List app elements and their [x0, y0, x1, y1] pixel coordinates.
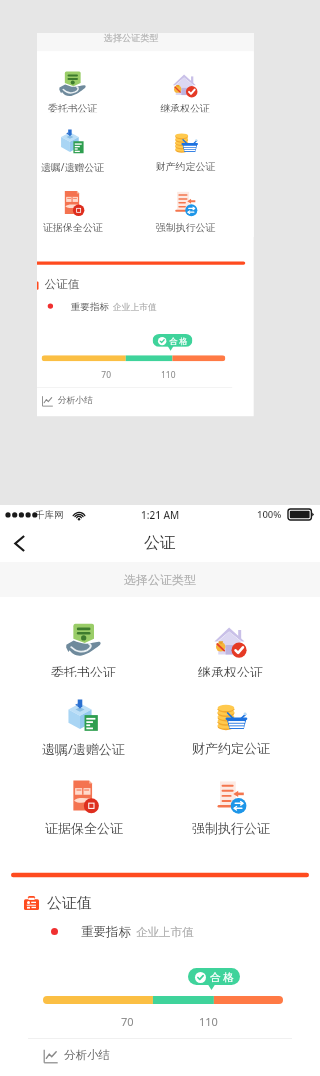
staticText: 110: [152, 353, 167, 364]
staticText: 100%: [257, 508, 282, 521]
button[interactable]: 分析小结: [37, 379, 84, 389]
staticText: 1:21 AM: [141, 508, 180, 522]
button[interactable]: 强制执行公证: [120, 157, 233, 221]
button[interactable]: 财产约定公证: [120, 96, 233, 157]
staticText: 公证值: [37, 261, 70, 276]
staticText: 110: [199, 1014, 218, 1029]
staticText: 企业上市值: [136, 925, 194, 939]
staticText: 遗嘱/遗赠公证: [37, 144, 96, 157]
staticText: 70: [93, 353, 103, 364]
staticText: 选择公证类型: [124, 572, 196, 587]
button[interactable]: 财产约定公证: [157, 677, 304, 757]
staticText: 强制执行公证: [147, 205, 207, 217]
staticText: 财产约定公证: [147, 144, 207, 156]
staticText: 强制执行公证: [192, 820, 270, 836]
staticText: 分析小结: [64, 1048, 110, 1062]
staticText: 委托书公证: [51, 664, 116, 677]
button[interactable]: 继承权公证: [120, 35, 233, 96]
staticText: 证据保全公证: [45, 820, 123, 836]
staticText: 财产约定公证: [192, 740, 270, 756]
staticText: 千库网: [35, 509, 64, 521]
button[interactable]: 委托书公证: [37, 35, 120, 96]
staticText: 证据保全公证: [37, 205, 94, 217]
staticText: 重要指标: [62, 284, 100, 296]
button[interactable]: 合 格: [188, 968, 240, 985]
staticText: 分析小结: [49, 379, 84, 389]
staticText: 70: [121, 1014, 134, 1029]
button[interactable]: 证据保全公证: [37, 157, 120, 221]
button[interactable]: 继承权公证: [157, 597, 304, 677]
button[interactable]: 强制执行公证: [157, 757, 304, 841]
button[interactable]: 分析小结: [43, 1048, 110, 1062]
button[interactable]: 委托书公证: [10, 597, 157, 677]
staticText: 合 格: [210, 970, 234, 984]
staticText: 继承权公证: [152, 86, 201, 96]
staticText: 委托书公证: [39, 86, 89, 96]
button[interactable]: 证据保全公证: [10, 757, 157, 841]
staticText: 重要指标: [81, 924, 131, 940]
staticText: 遗嘱/遗赠公证: [42, 740, 125, 757]
button[interactable]: 遗嘱/遗赠公证: [10, 677, 157, 757]
staticText: 公证: [144, 533, 176, 553]
button[interactable]: Back: [2, 526, 36, 560]
staticText: 继承权公证: [198, 664, 263, 677]
staticText: 公证值: [47, 894, 92, 913]
button[interactable]: 遗嘱/遗赠公证: [37, 96, 120, 157]
